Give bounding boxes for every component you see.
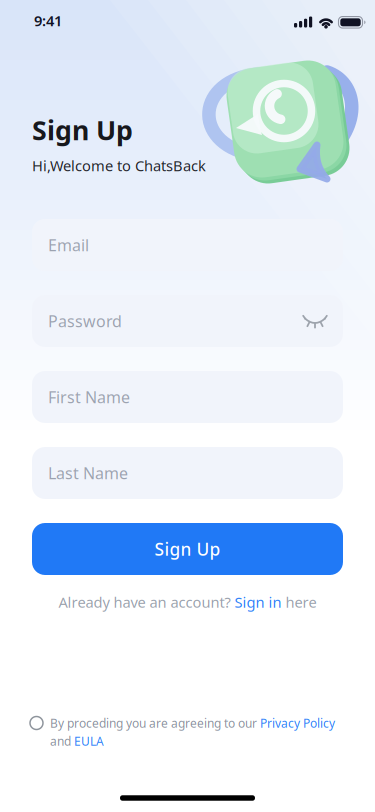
staticText: Sign Up (154, 537, 220, 560)
button[interactable]: EULA (74, 733, 104, 749)
button[interactable]: Agree to terms (30, 716, 43, 729)
staticText: Already have an account? (58, 592, 234, 612)
staticText: Sign Up (32, 112, 133, 148)
staticText: Sign in (234, 592, 281, 612)
button[interactable]: Sign Up (32, 523, 343, 575)
button[interactable]: Privacy Policy (260, 715, 335, 731)
staticText: Email (48, 234, 89, 256)
staticText: Hi,Welcome to ChatsBack (32, 156, 206, 175)
staticText: By proceding you are agreeing to our (50, 715, 260, 731)
staticText: here (281, 592, 316, 612)
button[interactable]: Sign in (234, 592, 281, 612)
staticText: 9:41 (34, 11, 62, 30)
staticText: and (50, 733, 74, 749)
staticText: Privacy Policy (260, 715, 335, 731)
staticText: First Name (48, 386, 130, 408)
button[interactable]: Show password (0, 0, 375, 812)
staticText: EULA (74, 733, 104, 749)
staticText: Password (48, 310, 122, 332)
staticText: Last Name (48, 462, 128, 484)
